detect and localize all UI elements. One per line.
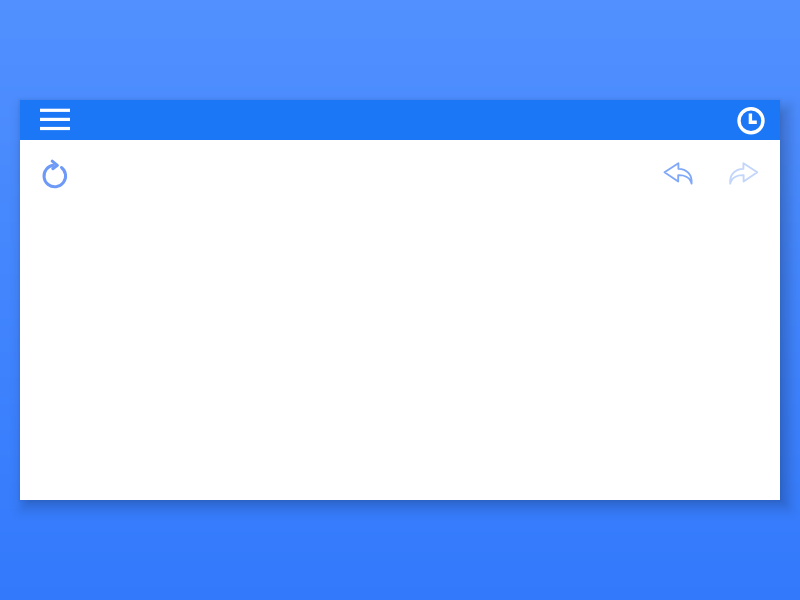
button[interactable]: History: [731, 100, 771, 140]
button[interactable]: Reply: [662, 159, 708, 205]
button[interactable]: Forward: [727, 159, 773, 205]
button[interactable]: Menu: [28, 100, 72, 140]
button[interactable]: Refresh: [33, 154, 77, 198]
